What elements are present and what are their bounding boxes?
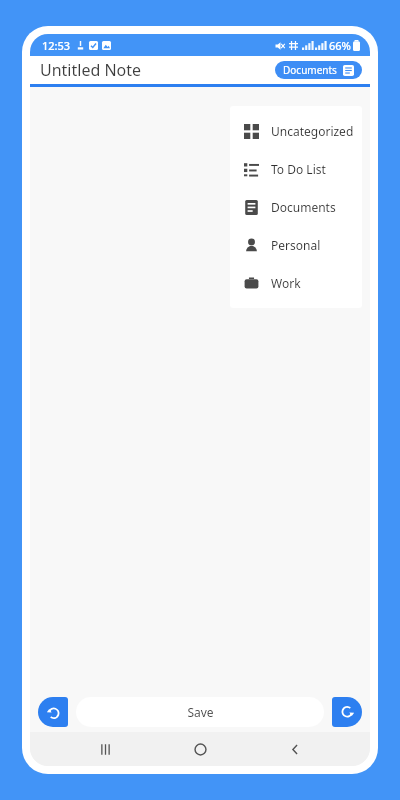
button[interactable]: Personal <box>230 226 362 264</box>
staticText: Work <box>271 275 301 291</box>
button[interactable]: To Do List <box>230 150 362 188</box>
button[interactable]: Recents <box>85 732 125 766</box>
button[interactable]: Home <box>180 732 220 766</box>
staticText: Uncategorized <box>271 123 354 139</box>
button[interactable]: Undo <box>38 697 68 727</box>
staticText: Untitled Note <box>40 59 142 81</box>
button[interactable]: Redo <box>332 697 362 727</box>
staticText: Documents <box>271 199 336 215</box>
staticText: Save <box>187 704 214 720</box>
staticText: Documents <box>283 63 337 77</box>
button[interactable] <box>30 87 370 692</box>
staticText: To Do List <box>271 161 326 177</box>
button[interactable]: Documents <box>230 188 362 226</box>
button[interactable]: Work <box>230 264 362 302</box>
staticText: 12:53 <box>42 38 71 53</box>
staticText: Personal <box>271 237 321 253</box>
button[interactable]: Back <box>275 732 315 766</box>
button[interactable]: Uncategorized <box>230 112 362 150</box>
button[interactable]: Save <box>76 697 324 727</box>
staticText: 66% <box>329 38 351 53</box>
button[interactable]: Documents <box>275 61 362 79</box>
